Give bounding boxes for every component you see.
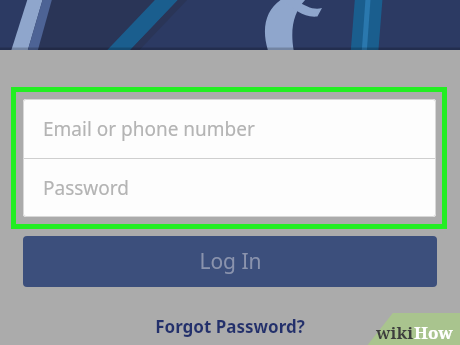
button[interactable]: Forgot Password? bbox=[145, 312, 315, 340]
staticText: wiki bbox=[376, 321, 414, 344]
button[interactable]: Log In bbox=[23, 236, 437, 287]
button[interactable]: Password bbox=[23, 159, 436, 217]
staticText: How bbox=[414, 321, 453, 344]
staticText: Log In bbox=[199, 247, 262, 276]
button[interactable]: Email or phone number bbox=[23, 99, 436, 158]
staticText: Email or phone number bbox=[43, 116, 255, 142]
staticText: Forgot Password? bbox=[155, 315, 305, 338]
staticText: Password bbox=[43, 175, 129, 201]
